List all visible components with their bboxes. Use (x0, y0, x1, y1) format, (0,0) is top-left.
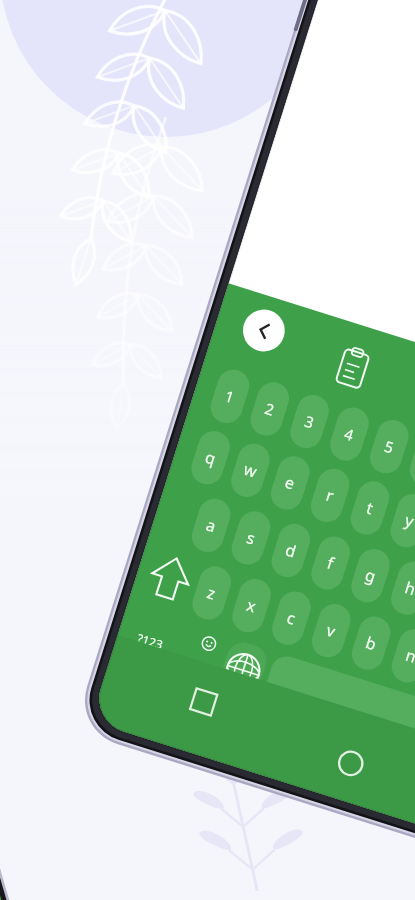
button[interactable]: Keyboard app promotional screen (0, 0, 415, 900)
